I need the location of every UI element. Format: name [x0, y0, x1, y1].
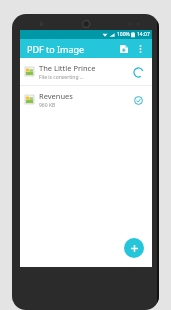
staticText: Revenues	[39, 91, 73, 101]
staticText: 100%	[117, 31, 130, 38]
staticText: 960 KB	[39, 102, 56, 109]
button[interactable]: The Little Prince	[20, 58, 152, 85]
button[interactable]: Add PDF file	[116, 41, 132, 57]
staticText: The Little Prince	[39, 63, 96, 73]
staticText: File is converting ...	[39, 74, 84, 81]
staticText: PDF to Image	[27, 43, 85, 55]
button[interactable]: Revenues	[20, 86, 152, 113]
button[interactable]: Completed	[130, 92, 146, 108]
button[interactable]: More options	[132, 41, 148, 57]
button[interactable]: Add	[124, 238, 144, 258]
staticText: 14:07	[137, 31, 150, 38]
button[interactable]: Converting	[130, 64, 146, 80]
